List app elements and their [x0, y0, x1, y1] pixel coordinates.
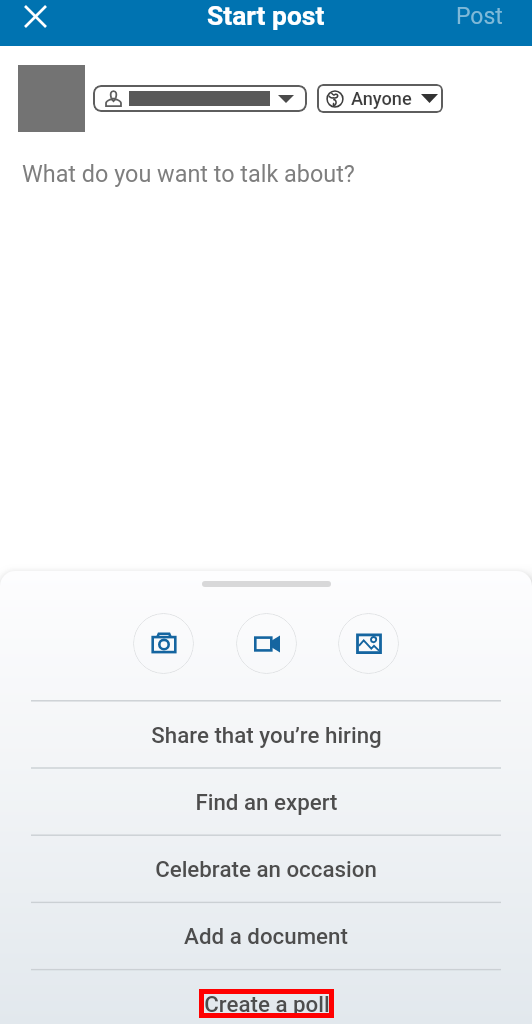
button[interactable]: Celebrate an occasion: [0, 836, 532, 902]
staticText: Find an expert: [195, 789, 338, 815]
button[interactable]: [93, 85, 307, 112]
staticText: Anyone: [351, 88, 412, 109]
staticText: Add a document: [184, 923, 348, 949]
staticText: Create a poll: [204, 991, 330, 1017]
button[interactable]: Anyone: [317, 84, 443, 113]
button[interactable]: Add a document: [0, 903, 532, 969]
staticText: Celebrate an occasion: [155, 856, 377, 882]
staticText: Post: [456, 3, 503, 30]
button[interactable]: Close: [13, 0, 58, 32]
button[interactable]: Share that you’re hiring: [0, 702, 532, 768]
staticText: Start post: [207, 1, 325, 32]
button[interactable]: Create a poll: [0, 970, 532, 1024]
staticText: Share that you’re hiring: [151, 722, 382, 748]
button[interactable]: Take a photo: [133, 613, 194, 674]
staticText: What do you want to talk about?: [22, 160, 355, 187]
button[interactable]: Find an expert: [0, 769, 532, 835]
button[interactable]: Post: [440, 0, 532, 32]
button[interactable]: Record a video: [236, 613, 297, 674]
button[interactable]: Add a photo: [338, 613, 399, 674]
